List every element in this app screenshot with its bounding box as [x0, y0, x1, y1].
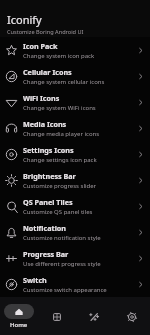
staticText: Switch: [23, 275, 47, 285]
button[interactable]: Switch: [0, 271, 150, 297]
staticText: Cellular Icons: [23, 67, 72, 77]
staticText: Customize switch appearance: [23, 286, 107, 294]
button[interactable]: Brightness Bar: [0, 167, 150, 193]
staticText: Progress Bar: [23, 249, 69, 259]
button[interactable]: Progress Bar: [0, 245, 150, 271]
staticText: Brightness Bar: [23, 171, 76, 181]
staticText: Media Icons: [23, 119, 67, 129]
staticText: Customize QS panel tiles: [23, 208, 93, 216]
button[interactable]: Icon Pack: [0, 37, 150, 63]
button[interactable]: Cellular Icons: [0, 63, 150, 89]
staticText: Iconify: [7, 12, 42, 27]
button[interactable]: WiFi Icons: [0, 89, 150, 115]
staticText: Change system icon pack: [23, 52, 95, 60]
staticText: Use different progress style: [23, 260, 101, 268]
staticText: Customize notification style: [23, 234, 101, 242]
staticText: Change system cellular icons: [23, 78, 105, 86]
staticText: Change settings icon pack: [23, 156, 97, 164]
button[interactable]: Home: [0, 297, 37, 335]
staticText: WiFi Icons: [23, 93, 60, 103]
button[interactable]: Settings: [113, 297, 150, 335]
button[interactable]: Customize: [75, 297, 112, 335]
button[interactable]: Notification: [0, 219, 150, 245]
staticText: Notification: [23, 223, 66, 233]
staticText: QS Panel Tiles: [23, 197, 73, 207]
staticText: Customize progress slider: [23, 182, 97, 190]
staticText: Icon Pack: [23, 41, 58, 51]
button[interactable]: Tweaks: [38, 297, 75, 335]
staticText: Customize Boring Android UI: [7, 28, 84, 36]
staticText: Change media player icons: [23, 130, 100, 138]
staticText: Home: [10, 321, 28, 329]
staticText: Settings Icons: [23, 145, 74, 155]
button[interactable]: Settings Icons: [0, 141, 150, 167]
button[interactable]: QS Panel Tiles: [0, 193, 150, 219]
staticText: Change system WiFi icons: [23, 104, 96, 112]
button[interactable]: Media Icons: [0, 115, 150, 141]
